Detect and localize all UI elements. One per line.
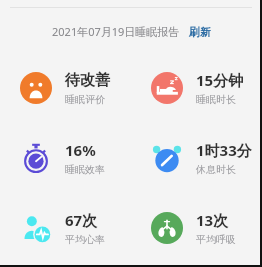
button[interactable]: Average respiration (131, 193, 262, 263)
button[interactable]: Sleep efficiency (0, 123, 131, 193)
staticText: 刷新 (189, 25, 211, 39)
staticText: 平均呼吸 (196, 233, 236, 246)
other: Average heart rate (20, 212, 52, 244)
staticText: 2021年07月19日睡眠报告 (52, 24, 180, 39)
staticText: 平均心率 (65, 233, 105, 246)
staticText: 67次 (65, 210, 98, 230)
button[interactable]: Sleep rating (0, 53, 131, 123)
staticText: 休息时长 (196, 163, 236, 176)
other: Rest duration (151, 142, 183, 174)
staticText: 睡眠效率 (65, 163, 105, 176)
staticText: 16% (65, 140, 96, 160)
staticText: 待改善 (65, 71, 110, 90)
other: Sleep rating (20, 72, 52, 104)
staticText: 1时33分 (196, 140, 252, 160)
other: Sleep efficiency (20, 142, 52, 174)
button[interactable]: 刷新 (189, 25, 211, 39)
button[interactable]: Sleep duration (131, 53, 262, 123)
button[interactable]: Average heart rate (0, 193, 131, 263)
staticText: 睡眠时长 (196, 93, 236, 106)
staticText: 15分钟 (196, 70, 244, 90)
button[interactable]: Rest duration (131, 123, 262, 193)
staticText: 睡眠评价 (65, 93, 105, 106)
staticText: 13次 (196, 210, 229, 230)
other: Sleep duration (151, 72, 183, 104)
other: Average respiration (151, 212, 183, 244)
